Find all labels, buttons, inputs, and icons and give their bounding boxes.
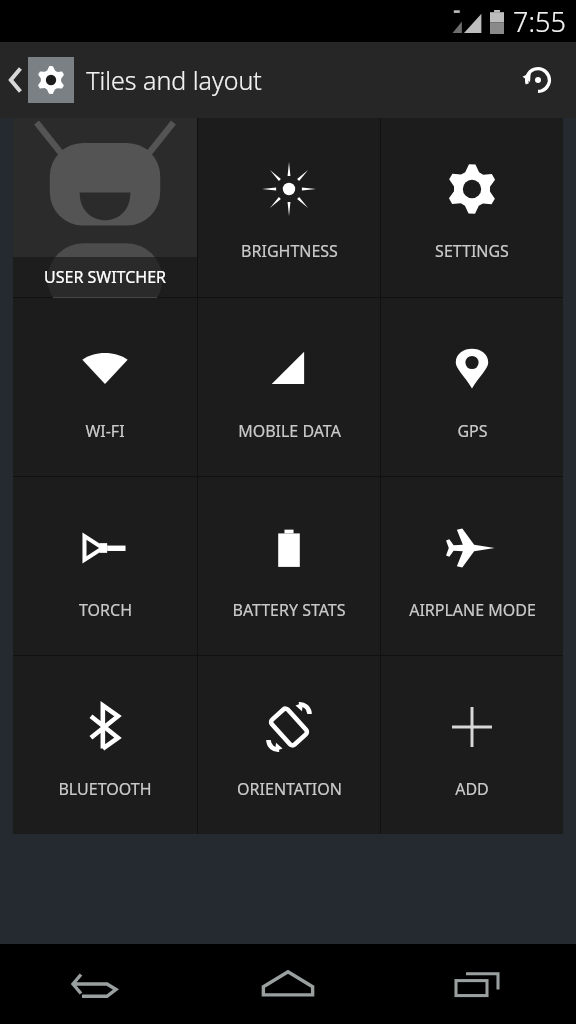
button[interactable]: GPS (381, 298, 563, 476)
staticText: USER SWITCHER (44, 266, 166, 288)
staticText: BATTERY STATS (232, 599, 346, 621)
button[interactable]: Recent apps (384, 944, 576, 1024)
staticText: TORCH (79, 599, 132, 621)
staticText: SETTINGS (435, 240, 509, 262)
staticText: MOBILE DATA (238, 420, 341, 442)
button[interactable]: WI-FI (13, 298, 197, 476)
button[interactable]: Back (6, 57, 262, 103)
button[interactable]: ORIENTATION (198, 656, 380, 834)
staticText: BRIGHTNESS (241, 240, 338, 262)
button[interactable]: TORCH (13, 477, 197, 655)
button[interactable]: BATTERY STATS (198, 477, 380, 655)
staticText: ADD (455, 778, 489, 800)
staticText: AIRPLANE MODE (409, 599, 536, 621)
button[interactable]: Back (0, 944, 192, 1024)
button[interactable]: ADD (381, 656, 563, 834)
staticText: ORIENTATION (237, 778, 342, 800)
button[interactable]: BLUETOOTH (13, 656, 197, 834)
staticText: Tiles and layout (86, 63, 262, 97)
button[interactable]: USER SWITCHER (13, 118, 197, 297)
button[interactable]: SETTINGS (381, 118, 563, 297)
button[interactable]: Home (192, 944, 384, 1024)
staticText: WI-FI (85, 420, 125, 442)
staticText: BLUETOOTH (58, 778, 152, 800)
button[interactable]: AIRPLANE MODE (381, 477, 563, 655)
button[interactable]: BRIGHTNESS (198, 118, 380, 297)
staticText: 7:55 (513, 3, 566, 40)
button[interactable]: Reset to defaults (514, 56, 562, 104)
staticText: GPS (457, 420, 488, 442)
button[interactable]: MOBILE DATA (198, 298, 380, 476)
